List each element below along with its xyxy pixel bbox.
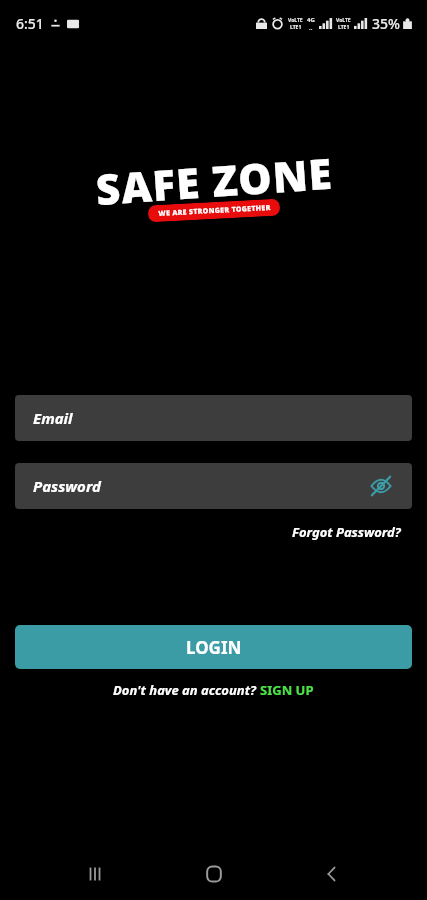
button[interactable]: Home	[190, 850, 238, 898]
button[interactable]: Password	[15, 463, 412, 509]
staticText: VoLTE	[288, 17, 303, 24]
staticText: Don't have an account?	[113, 681, 260, 699]
staticText: ..	[309, 24, 313, 32]
staticText: 35%	[372, 14, 400, 33]
button[interactable]: Back	[308, 850, 356, 898]
staticText: VoLTE	[336, 17, 351, 24]
button[interactable]: Forgot Password?	[290, 519, 403, 545]
staticText: Email	[33, 408, 73, 428]
button[interactable]: Email	[15, 395, 412, 441]
staticText: Password	[33, 476, 101, 496]
button[interactable]: Recent apps	[71, 850, 119, 898]
staticText: 6:51	[16, 14, 44, 33]
staticText: Forgot Password?	[292, 523, 401, 541]
button[interactable]: SIGN UP	[260, 681, 314, 699]
button[interactable]: LOGIN	[15, 625, 412, 669]
button[interactable]: Show password	[364, 469, 398, 503]
staticText: 4G	[307, 16, 315, 24]
staticText: LTE1	[338, 24, 350, 31]
staticText: LTE1	[290, 24, 302, 31]
staticText: SAFE ZONE	[93, 144, 335, 217]
staticText: LOGIN	[186, 636, 242, 659]
staticText: SIGN UP	[260, 681, 314, 699]
staticText: WE ARE STRONGER TOGETHER	[158, 203, 271, 219]
